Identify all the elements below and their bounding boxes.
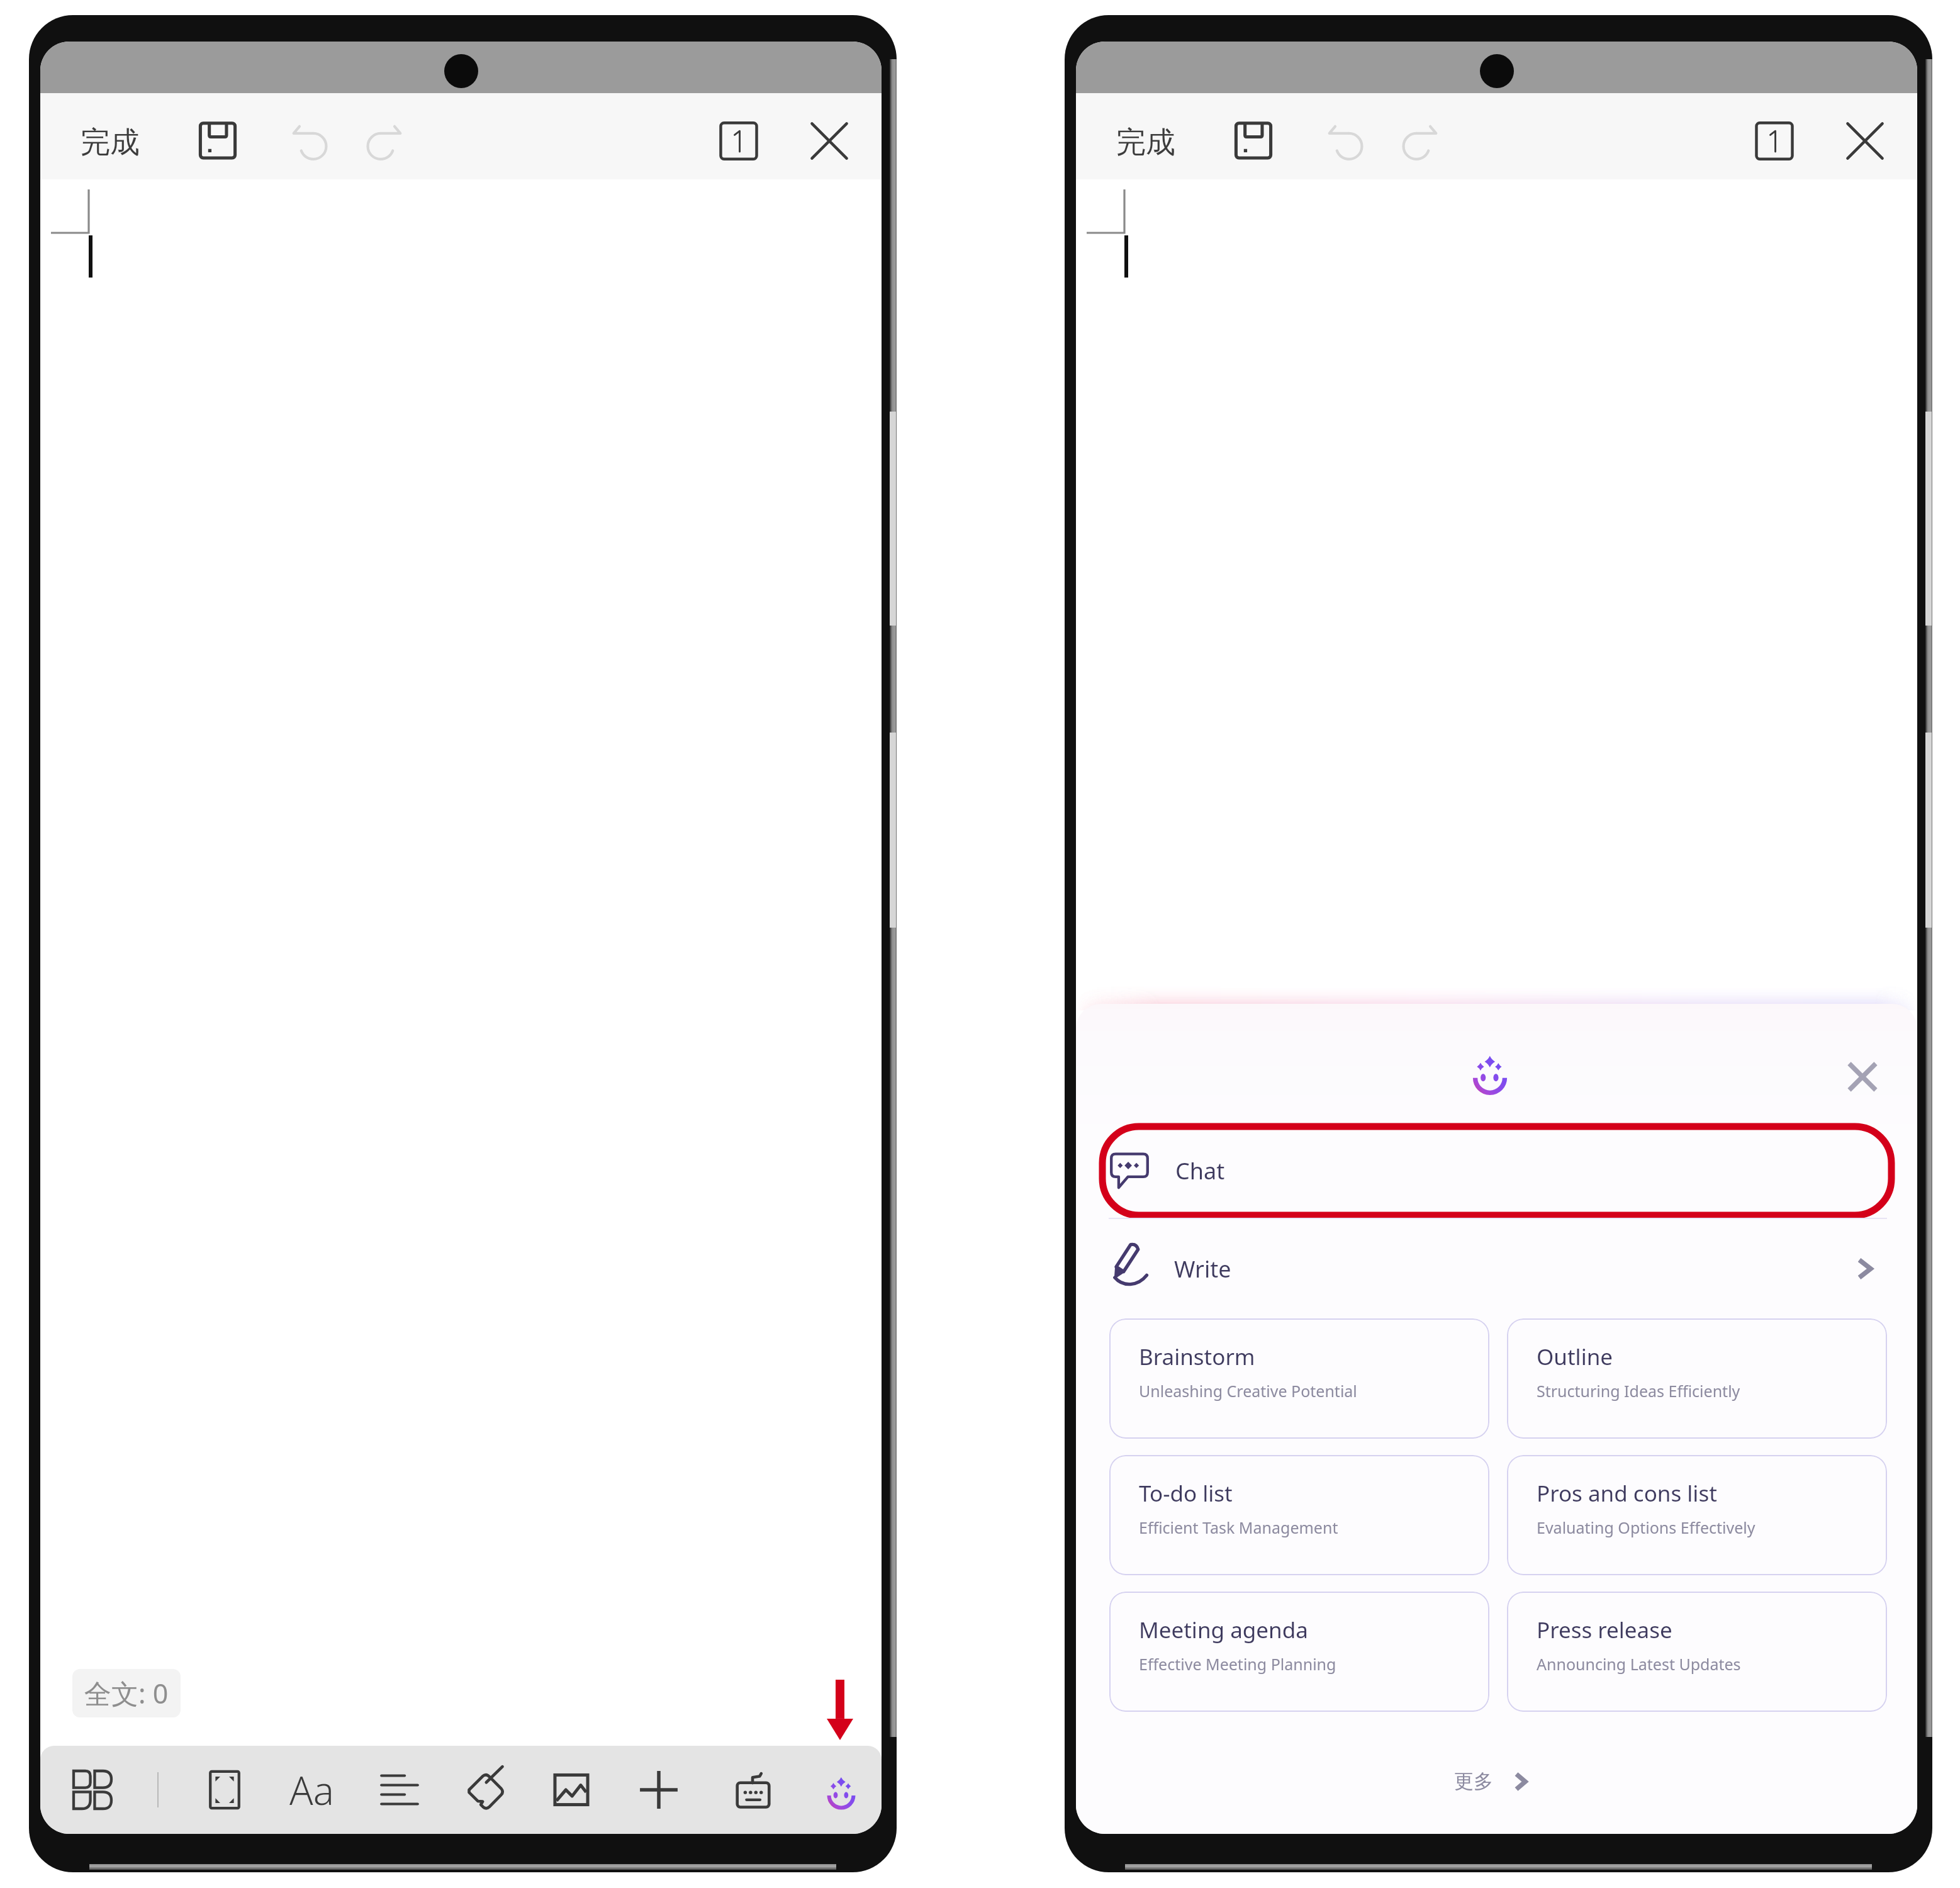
staticText: Aa: [289, 1763, 334, 1816]
button[interactable]: Outline: [1507, 1318, 1887, 1439]
button[interactable]: To-do list: [1109, 1455, 1489, 1575]
staticText: Pros and cons list: [1537, 1478, 1717, 1509]
staticText: Unleashing Creative Potential: [1139, 1380, 1357, 1402]
button[interactable]: Undo: [1310, 105, 1388, 183]
button[interactable]: 完成: [68, 114, 152, 171]
button[interactable]: Press release: [1507, 1592, 1887, 1712]
staticText: Announcing Latest Updates: [1537, 1653, 1741, 1675]
button[interactable]: Aa: [270, 1746, 353, 1834]
button[interactable]: Align: [358, 1746, 441, 1834]
staticText: Efficient Task Management: [1139, 1517, 1338, 1538]
button[interactable]: Layout: [51, 1746, 134, 1834]
button[interactable]: Pages: [700, 102, 778, 180]
button[interactable]: Keyboard: [712, 1746, 795, 1834]
button[interactable]: Redo: [342, 105, 420, 183]
staticText: 更多: [1454, 1769, 1493, 1794]
staticText: Outline: [1537, 1342, 1613, 1372]
staticText: Evaluating Options Effectively: [1537, 1517, 1756, 1538]
staticText: 完成: [81, 124, 140, 161]
button[interactable]: Close: [790, 102, 868, 180]
staticText: Brainstorm: [1139, 1342, 1255, 1372]
button[interactable]: Save: [179, 102, 257, 180]
button[interactable]: Save: [1214, 102, 1292, 180]
button[interactable]: Image: [530, 1746, 613, 1834]
button[interactable]: Meeting agenda: [1109, 1592, 1489, 1712]
button[interactable]: 完成: [1104, 114, 1188, 171]
staticText: Structuring Ideas Efficiently: [1537, 1380, 1740, 1402]
staticText: 完成: [1116, 124, 1175, 161]
button[interactable]: Redo: [1377, 105, 1455, 183]
button[interactable]: AI Assistant: [800, 1746, 882, 1834]
button[interactable]: Eraser: [443, 1746, 526, 1834]
button[interactable]: Brainstorm: [1109, 1318, 1489, 1439]
staticText: Write: [1174, 1254, 1231, 1284]
button[interactable]: Pros and cons list: [1507, 1455, 1887, 1575]
staticText: Chat: [1175, 1155, 1225, 1186]
button[interactable]: Pages: [1735, 102, 1813, 180]
button[interactable]: Close: [1826, 102, 1904, 180]
button[interactable]: Select: [183, 1746, 266, 1834]
button[interactable]: Chat: [1076, 1123, 1917, 1218]
button[interactable]: Close: [1832, 1047, 1893, 1107]
button[interactable]: Add: [617, 1746, 700, 1834]
staticText: To-do list: [1139, 1478, 1233, 1509]
button[interactable]: Write: [1076, 1219, 1917, 1318]
staticText: Meeting agenda: [1139, 1615, 1308, 1645]
button[interactable]: 更多: [1076, 1712, 1917, 1834]
staticText: Press release: [1537, 1615, 1672, 1645]
staticText: Effective Meeting Planning: [1139, 1653, 1336, 1675]
staticText: 全文: 0: [84, 1675, 169, 1712]
button[interactable]: Undo: [274, 105, 352, 183]
